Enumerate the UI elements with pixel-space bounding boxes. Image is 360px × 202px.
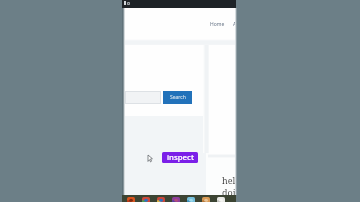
button[interactable]: A — [233, 19, 237, 27]
staticText: Search — [170, 94, 186, 101]
button[interactable]: Taskbar app 4 — [172, 197, 180, 202]
button[interactable]: Taskbar app 6 — [202, 197, 210, 202]
button[interactable]: inspect — [162, 152, 198, 163]
button[interactable] — [125, 91, 161, 104]
staticText: Home — [210, 21, 225, 28]
button[interactable]: Taskbar app 2 — [142, 197, 150, 202]
button[interactable]: Home — [210, 19, 225, 27]
button[interactable]: Taskbar app 1 — [127, 197, 135, 202]
staticText: inspect — [167, 152, 194, 163]
button[interactable]: Taskbar app 3 — [157, 197, 165, 202]
staticText: doi — [222, 186, 236, 198]
button[interactable]: Taskbar app 5 — [187, 197, 195, 202]
button[interactable]: Taskbar app 7 — [217, 197, 225, 202]
staticText: A — [233, 21, 237, 28]
staticText: hel — [222, 174, 236, 186]
button[interactable]: Search — [163, 91, 192, 104]
